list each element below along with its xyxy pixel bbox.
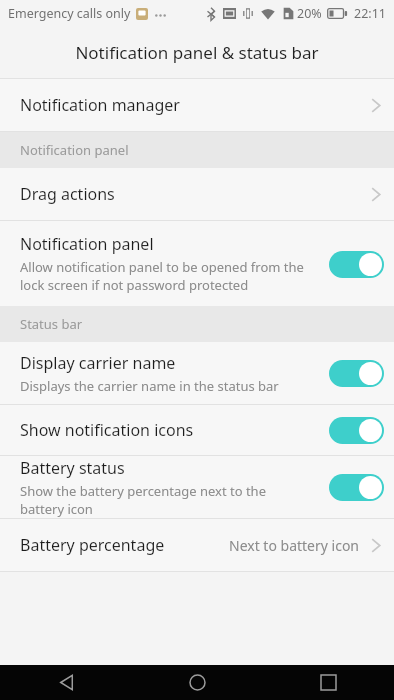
button[interactable]: Home <box>132 665 263 700</box>
staticText: Notification panel <box>20 233 154 255</box>
staticText: Allow notification panel to be opened fr… <box>20 258 313 294</box>
staticText: Show the battery percentage next to the … <box>20 482 313 518</box>
button[interactable]: Display carrier name switch, on <box>327 356 385 390</box>
staticText: Show notification icons <box>20 419 194 441</box>
staticText: Status bar <box>20 315 83 333</box>
staticText: Display carrier name <box>20 352 176 374</box>
staticText: Drag actions <box>20 183 115 205</box>
button[interactable]: Notification panel switch, on <box>327 247 385 281</box>
staticText: Emergency calls only <box>8 5 131 22</box>
button[interactable]: Show notification icons <box>0 405 394 455</box>
button[interactable]: Drag actions <box>0 168 394 220</box>
button[interactable]: Show notification icons switch, on <box>327 413 385 447</box>
staticText: Battery status <box>20 457 125 479</box>
staticText: Notification panel <box>20 141 129 159</box>
button[interactable]: Notification manager <box>0 79 394 131</box>
staticText: Notification panel & status bar <box>75 41 319 64</box>
button[interactable]: Battery status <box>0 456 394 518</box>
staticText: 20% <box>297 5 322 22</box>
staticText: 22:11 <box>354 5 386 22</box>
staticText: Notification manager <box>20 94 180 116</box>
staticText: Displays the carrier name in the status … <box>20 377 279 395</box>
button[interactable]: Display carrier name <box>0 342 394 404</box>
button[interactable]: Recent apps <box>263 665 394 700</box>
button[interactable]: Back <box>0 665 132 700</box>
staticText: Next to battery icon <box>229 536 360 555</box>
button[interactable]: Battery percentage <box>0 519 394 571</box>
staticText: Battery percentage <box>20 534 165 556</box>
button[interactable]: Battery status switch, on <box>327 470 385 504</box>
button[interactable]: Notification panel <box>0 221 394 306</box>
